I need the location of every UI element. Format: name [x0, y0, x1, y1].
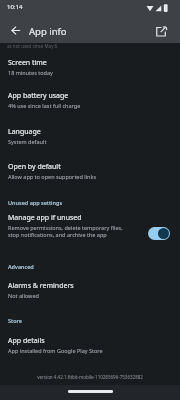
button[interactable]: [154, 23, 170, 39]
staticText: 18 minutes today: [8, 69, 53, 76]
staticText: Unused app settings: [8, 199, 63, 206]
staticText: System default: [8, 138, 47, 145]
staticText: Language: [8, 127, 41, 137]
staticText: as not used since May 6: [7, 43, 58, 49]
button[interactable]: Alarms & reminders: [0, 281, 180, 299]
button[interactable]: [8, 22, 24, 38]
button[interactable]: [148, 227, 170, 240]
staticText: App details: [8, 336, 45, 346]
button[interactable]: Screen time: [0, 58, 180, 76]
button[interactable]: Language: [0, 127, 180, 145]
staticText: stop notifications, and archive the app: [8, 231, 107, 238]
staticText: Remove permissions, delete temporary fil…: [8, 224, 123, 231]
staticText: Screen time: [8, 58, 47, 68]
staticText: App installed from Google Play Store: [8, 347, 103, 354]
staticText: App info: [29, 25, 67, 38]
button[interactable]: Open by default: [0, 162, 180, 180]
staticText: Open by default: [8, 162, 61, 172]
staticText: App battery usage: [8, 91, 69, 101]
staticText: Manage app if unused: [8, 213, 82, 223]
staticText: Not allowed: [8, 292, 39, 299]
staticText: Advanced: [8, 263, 34, 270]
staticText: Store: [8, 317, 22, 324]
button[interactable]: App battery usage: [0, 91, 180, 109]
staticText: Alarms & reminders: [8, 281, 74, 291]
button[interactable]: Manage app if unused: [0, 213, 180, 238]
staticText: Allow app to open supported links: [8, 173, 97, 180]
staticText: 4% use since last full charge: [8, 102, 81, 109]
staticText: 10:14: [7, 3, 23, 11]
staticText: version 4.42.1.fitbit-mobile-110285696-7…: [0, 374, 180, 380]
button[interactable]: App details: [0, 336, 180, 354]
